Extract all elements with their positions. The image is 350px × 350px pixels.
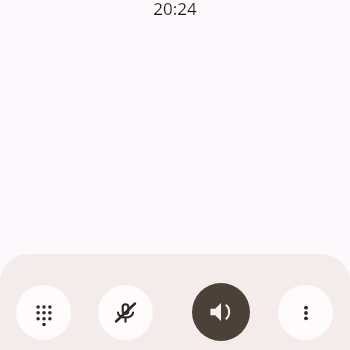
button[interactable]: Speaker [192,283,250,341]
button[interactable]: Mute microphone [98,285,153,340]
staticText: 20:24 [153,0,197,20]
button[interactable]: More options [278,285,333,340]
button[interactable]: Dialpad [16,285,71,340]
